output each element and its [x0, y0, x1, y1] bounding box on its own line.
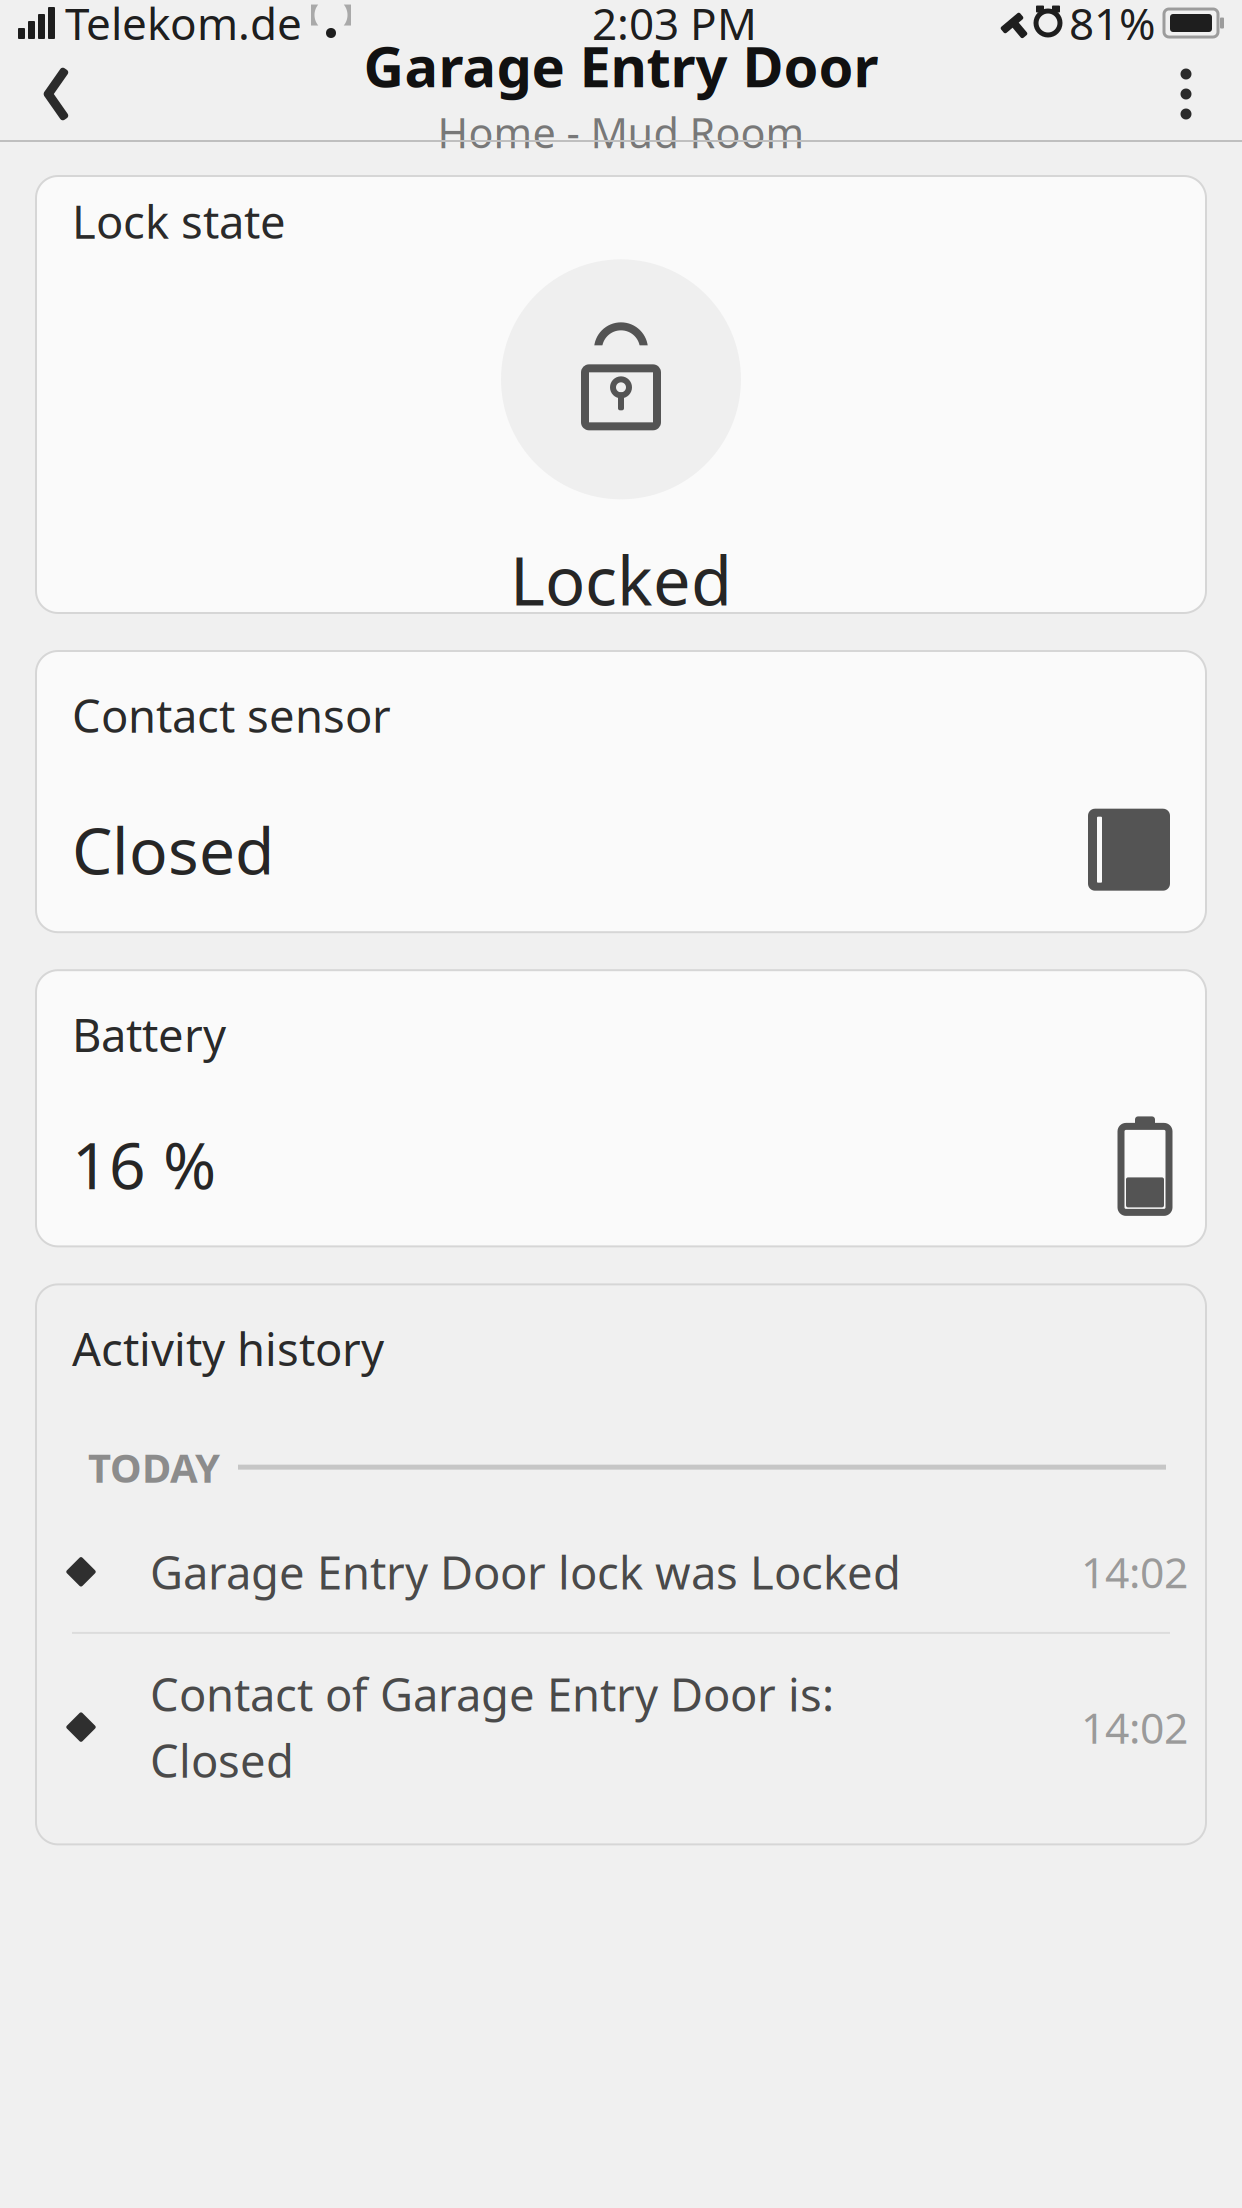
staticText: 16 %	[72, 1122, 216, 1207]
staticText: TODAY	[88, 1441, 220, 1494]
staticText: 2:03 PM	[592, 0, 757, 52]
staticText: Battery	[72, 1004, 226, 1064]
staticText: Telekom.de	[65, 0, 302, 52]
staticText: Garage Entry Door	[363, 28, 878, 103]
button[interactable]: Back	[14, 46, 98, 142]
staticText: 81%	[1069, 0, 1156, 52]
staticText: Locked	[510, 535, 732, 624]
staticText: Garage Entry Door lock was Locked	[150, 1542, 901, 1602]
staticText: Closed	[150, 1730, 294, 1790]
staticText: Home - Mud Room	[437, 105, 804, 160]
staticText: 14:02	[1081, 1699, 1188, 1755]
staticText: Lock state	[72, 191, 286, 251]
staticText: Closed	[72, 807, 274, 892]
button[interactable]: Garage Entry Door lock was Locked	[36, 1512, 1206, 1632]
staticText: Contact sensor	[72, 685, 391, 745]
staticText: 14:02	[1081, 1543, 1188, 1600]
staticText: Activity history	[72, 1318, 384, 1379]
button[interactable]: Toggle lock	[501, 259, 741, 499]
button[interactable]: Contact of Garage Entry Door is:	[36, 1634, 1206, 1820]
staticText: Contact of Garage Entry Door is:	[150, 1664, 834, 1724]
button[interactable]: More options	[1144, 46, 1228, 142]
